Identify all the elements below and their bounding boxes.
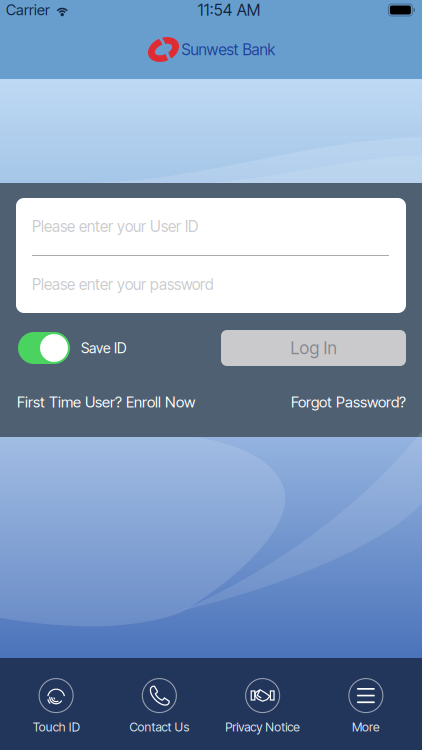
button[interactable]: First Time User? Enroll Now	[17, 392, 195, 412]
staticText: Forgot Password?	[291, 393, 406, 411]
staticText: 11:54 AM	[198, 0, 261, 20]
staticText: Privacy Notice	[225, 720, 300, 734]
staticText: Sunwest Bank	[181, 40, 275, 59]
button[interactable]: Touch ID	[4, 679, 108, 734]
button[interactable]: More	[314, 679, 417, 734]
staticText: Carrier	[6, 1, 50, 19]
staticText: More	[352, 720, 380, 734]
staticText: First Time User? Enroll Now	[17, 393, 195, 411]
staticText: Log In	[290, 337, 336, 358]
button[interactable]: Log In	[221, 330, 406, 366]
button[interactable]: Forgot Password?	[291, 392, 406, 412]
staticText: Contact Us	[129, 720, 189, 734]
button[interactable]: Save ID	[18, 330, 126, 366]
staticText: Save ID	[81, 339, 126, 356]
staticText: Please enter your password	[32, 275, 214, 294]
button[interactable]: Contact Us	[108, 679, 211, 734]
button[interactable]: Please enter your User ID	[16, 198, 406, 255]
button[interactable]: Please enter your password	[16, 256, 406, 313]
button[interactable]: Privacy Notice	[211, 679, 314, 734]
staticText: Please enter your User ID	[32, 217, 198, 236]
staticText: Touch ID	[33, 720, 80, 734]
